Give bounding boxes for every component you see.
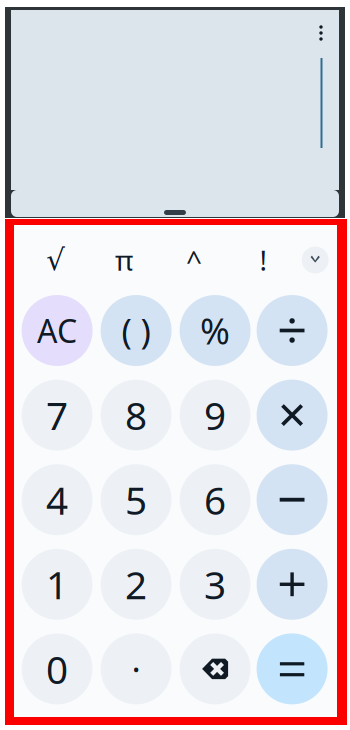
staticText: ^ [186, 241, 202, 279]
button[interactable]: 1 [22, 549, 93, 620]
button[interactable]: 4 [22, 464, 93, 535]
button[interactable]: Multiply [257, 380, 328, 451]
staticText: ( ) [122, 307, 151, 353]
staticText: · [132, 646, 141, 692]
button[interactable]: √ [14, 237, 97, 283]
button[interactable]: Minus [257, 464, 328, 535]
button[interactable]: 5 [101, 464, 172, 535]
button[interactable]: π [97, 237, 150, 283]
button[interactable]: Backspace [180, 633, 251, 704]
staticText: ! [260, 241, 268, 279]
button[interactable]: More functions [302, 246, 329, 273]
staticText: √ [46, 243, 65, 277]
staticText: 8 [125, 389, 147, 441]
button[interactable]: ^ [150, 237, 238, 283]
staticText: 7 [46, 389, 68, 441]
button[interactable]: Equals [257, 633, 328, 704]
staticText: 6 [204, 474, 226, 525]
button[interactable]: More options [308, 20, 339, 46]
staticText: 9 [204, 389, 226, 441]
button[interactable]: 7 [22, 380, 93, 451]
button[interactable]: 8 [101, 380, 172, 451]
staticText: AC [37, 309, 77, 352]
staticText: 5 [125, 474, 147, 525]
button[interactable]: ( ) [101, 295, 172, 366]
button[interactable]: Divide [257, 295, 328, 366]
staticText: 3 [204, 559, 226, 610]
button[interactable]: Plus [257, 549, 328, 620]
staticText: 2 [125, 559, 147, 610]
button[interactable]: % [180, 295, 251, 366]
staticText: 1 [46, 559, 68, 610]
button[interactable]: ! [238, 237, 289, 283]
button[interactable]: 2 [101, 549, 172, 620]
button[interactable]: 6 [180, 464, 251, 535]
staticText: 4 [46, 474, 68, 525]
staticText: π [115, 241, 133, 279]
button[interactable]: 0 [22, 633, 93, 704]
button[interactable]: AC [22, 295, 93, 366]
button[interactable]: 3 [180, 549, 251, 620]
button[interactable]: · [101, 633, 172, 704]
staticText: 0 [46, 643, 68, 694]
staticText: % [200, 307, 230, 354]
button[interactable]: 9 [180, 380, 251, 451]
